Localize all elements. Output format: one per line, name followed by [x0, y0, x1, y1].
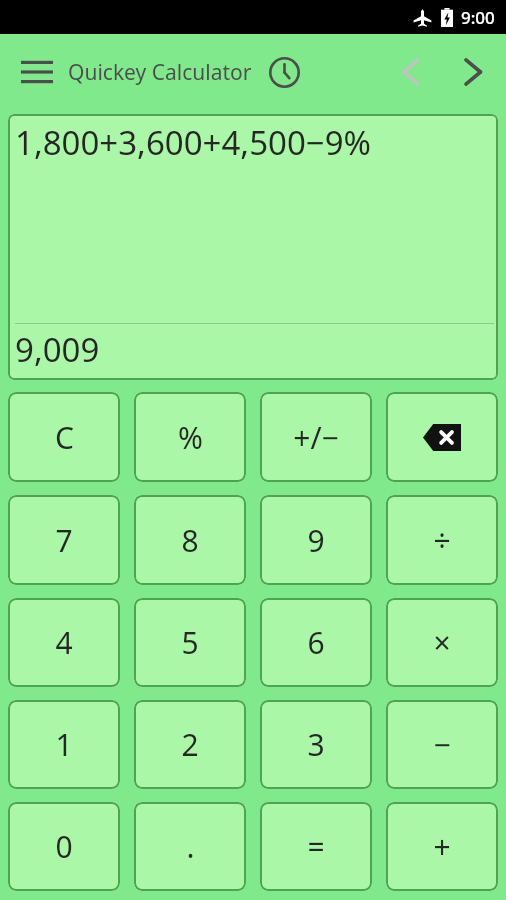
button[interactable]: 8 [134, 495, 246, 585]
button[interactable]: = [260, 802, 372, 891]
staticText: . [186, 826, 195, 867]
staticText: 5 [181, 622, 199, 663]
button[interactable]: 3 [260, 700, 372, 789]
staticText: 7 [55, 520, 73, 561]
button[interactable]: ÷ [386, 495, 498, 585]
staticText: − [433, 724, 451, 765]
staticText: 4 [55, 622, 73, 663]
staticText: C [55, 417, 74, 458]
button[interactable]: +/− [260, 392, 372, 482]
button[interactable]: + [386, 802, 498, 891]
button[interactable]: Previous [388, 49, 434, 95]
button[interactable]: 5 [134, 598, 246, 687]
button[interactable]: 1,800+3,600+4,500−9% [8, 114, 498, 380]
staticText: 8 [181, 520, 199, 561]
button[interactable]: History [262, 50, 306, 94]
staticText: + [433, 826, 451, 867]
button[interactable]: % [134, 392, 246, 482]
staticText: × [433, 622, 451, 663]
staticText: % [178, 417, 203, 458]
staticText: 9:00 [461, 6, 495, 29]
button[interactable]: Next [450, 49, 496, 95]
staticText: +/− [293, 417, 339, 458]
button[interactable]: 4 [8, 598, 120, 687]
staticText: 9,009 [15, 327, 100, 372]
staticText: 6 [307, 622, 325, 663]
button[interactable]: . [134, 802, 246, 891]
staticText: 3 [307, 724, 325, 765]
button[interactable]: 2 [134, 700, 246, 789]
staticText: 1 [55, 724, 73, 765]
button[interactable]: 0 [8, 802, 120, 891]
staticText: ÷ [433, 520, 451, 561]
button[interactable]: 7 [8, 495, 120, 585]
staticText: 2 [181, 724, 199, 765]
button[interactable]: Backspace [386, 392, 498, 482]
button[interactable]: C [8, 392, 120, 482]
button[interactable]: Menu [14, 49, 60, 95]
button[interactable]: 9 [260, 495, 372, 585]
staticText: = [307, 826, 325, 867]
staticText: 0 [55, 826, 73, 867]
button[interactable]: − [386, 700, 498, 789]
button[interactable]: 1 [8, 700, 120, 789]
staticText: 1,800+3,600+4,500−9% [15, 120, 371, 165]
button[interactable]: 6 [260, 598, 372, 687]
button[interactable]: × [386, 598, 498, 687]
staticText: Quickey Calculator [68, 58, 252, 87]
staticText: 9 [307, 520, 325, 561]
